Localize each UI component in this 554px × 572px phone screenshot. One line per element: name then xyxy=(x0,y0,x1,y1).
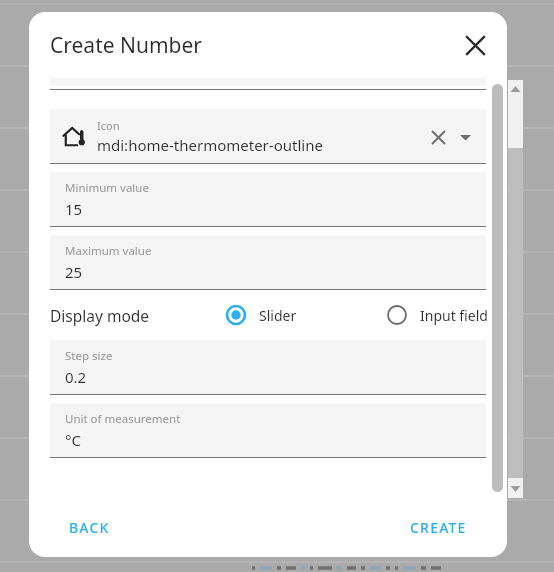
button[interactable]: Minimum value xyxy=(50,172,486,227)
staticText: Slider xyxy=(259,306,297,325)
staticText: Input field xyxy=(420,306,488,325)
staticText: 0.2 xyxy=(65,367,87,387)
staticText: Icon xyxy=(97,118,120,133)
staticText: CREATE xyxy=(410,518,467,537)
staticText: Maximum value xyxy=(65,243,152,259)
other: Dialog scrollbar xyxy=(492,84,503,492)
button[interactable]: Slider xyxy=(225,304,297,326)
button[interactable]: BACK xyxy=(57,509,122,546)
staticText: BACK xyxy=(69,518,110,537)
staticText: Display mode xyxy=(50,305,150,326)
staticText: 15 xyxy=(65,199,83,219)
other: Page scrollbar xyxy=(508,80,523,498)
button[interactable]: Maximum value xyxy=(50,235,486,290)
staticText: Unit of measurement xyxy=(65,411,181,427)
staticText: Minimum value xyxy=(65,180,149,196)
button[interactable]: Input field xyxy=(386,304,488,326)
staticText: °C xyxy=(65,430,81,450)
button[interactable]: Unit of measurement xyxy=(50,403,486,458)
button[interactable]: CREATE xyxy=(398,509,479,546)
button[interactable]: Open icon picker xyxy=(452,124,478,150)
button[interactable]: Clear icon xyxy=(424,123,452,151)
staticText: 25 xyxy=(65,262,83,282)
button[interactable]: Step size xyxy=(50,340,486,395)
button[interactable]: Close xyxy=(453,23,497,67)
staticText: mdi:home-thermometer-outline xyxy=(97,135,323,155)
staticText: Create Number xyxy=(50,31,203,60)
staticText: Step size xyxy=(65,348,113,364)
button[interactable]: Icon xyxy=(50,109,486,164)
